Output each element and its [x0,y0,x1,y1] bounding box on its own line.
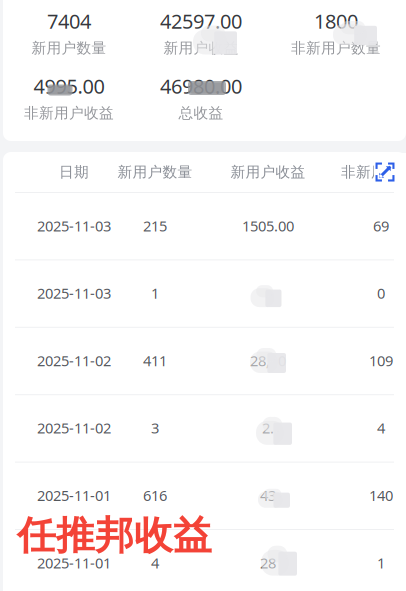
staticText: 2025-11-03 [37,216,111,235]
staticText: 616 [143,486,167,505]
staticText: 42597.00 [160,8,242,34]
staticText: 1 [151,283,159,303]
staticText: 4995.00 [33,73,104,99]
staticText: 新用户收益 [163,39,238,57]
staticText: 1 [377,553,385,572]
button[interactable]: 全屏显示 [370,158,400,186]
staticText: 46980.00 [160,73,242,99]
staticText: 2025-11-01 [37,553,111,572]
staticText: 4 [151,553,159,572]
staticText: 2. [262,418,274,438]
staticText: 69 [373,216,389,235]
staticText: 新用户数量 [31,39,106,57]
staticText: 3 [151,418,159,438]
staticText: 0 [377,283,385,303]
staticText: 2025-11-01 [37,486,111,505]
staticText: 215 [143,216,167,235]
staticText: 140 [369,486,393,505]
staticText: 新用户收益 [230,163,305,181]
staticText: 非新用户数量 [341,163,406,181]
staticText: 2025-11-02 [37,351,111,370]
staticText: 109 [369,351,393,370]
staticText: 43 [260,486,276,505]
staticText: 28, 0 [250,351,286,370]
staticText: 非新用户数量 [291,39,381,57]
staticText: 4 [377,418,385,438]
staticText: 7404 [47,8,91,34]
staticText: 1800 [314,8,358,34]
staticText: 411 [143,351,167,370]
staticText: 新用户数量 [117,163,192,181]
staticText: 2025-11-03 [37,283,111,303]
staticText: 日期 [59,163,89,181]
staticText: 任推邦收益 [17,512,212,559]
staticText: 总收益 [178,104,223,122]
staticText: 1505.00 [242,216,294,235]
staticText: 2025-11-02 [37,418,111,438]
staticText: 28 [260,553,276,572]
staticText: 非新用户收益 [24,104,114,122]
